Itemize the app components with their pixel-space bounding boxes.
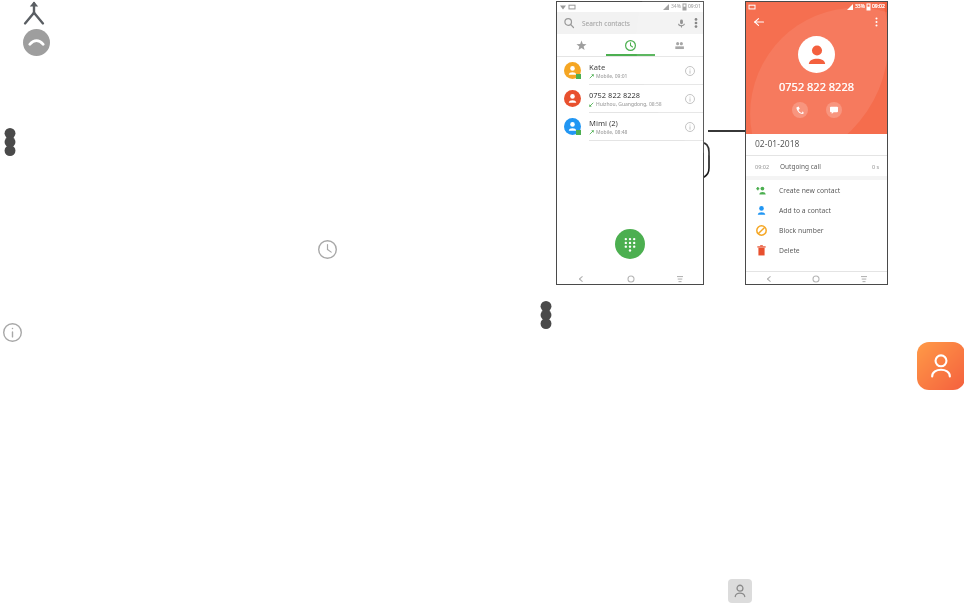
button[interactable]: Mimi (2) xyxy=(556,113,704,140)
button[interactable]: Home xyxy=(792,272,840,285)
button[interactable]: Contact xyxy=(728,579,752,603)
button[interactable]: Call xyxy=(792,102,808,118)
staticText: 0752 822 8228 xyxy=(589,90,641,100)
button[interactable]: Add to a contact xyxy=(745,200,888,220)
button[interactable]: Back xyxy=(751,14,767,30)
button[interactable]: 0752 822 8228 xyxy=(556,85,704,112)
button[interactable]: Back xyxy=(745,272,792,285)
button[interactable]: Recents xyxy=(840,272,888,285)
staticText: Search contacts xyxy=(582,19,630,28)
button[interactable]: Back xyxy=(556,272,606,285)
staticText: 09:01 xyxy=(688,3,701,10)
staticText: 0 s xyxy=(872,163,880,170)
button[interactable]: Recents xyxy=(606,34,655,56)
staticText: Block number xyxy=(779,226,824,235)
staticText: 09:02 xyxy=(755,163,770,170)
button[interactable]: Contacts xyxy=(655,34,704,56)
button[interactable]: Call history xyxy=(318,240,337,259)
staticText: Outgoing call xyxy=(780,162,821,171)
button[interactable]: End call xyxy=(23,29,50,56)
button[interactable]: Merge calls xyxy=(20,1,48,29)
staticText: Kate xyxy=(589,62,606,72)
button[interactable]: Recents xyxy=(655,272,704,285)
button[interactable]: Kate xyxy=(556,57,704,84)
button[interactable]: Call details xyxy=(680,61,700,81)
staticText: Mimi (2) xyxy=(589,118,618,128)
staticText: 34% xyxy=(671,3,681,10)
button[interactable]: More options xyxy=(2,130,18,154)
staticText: Mobile, 09:01 xyxy=(596,73,628,80)
button[interactable]: 09:02 xyxy=(745,156,888,176)
button[interactable]: Delete xyxy=(745,240,888,260)
button[interactable]: Home xyxy=(606,272,655,285)
button[interactable]: Call details xyxy=(680,89,700,109)
staticText: 33% xyxy=(855,3,865,10)
button[interactable]: Information xyxy=(3,323,22,342)
button[interactable]: More options xyxy=(538,303,554,327)
staticText: Mobile, 08:48 xyxy=(596,129,628,136)
button[interactable]: Block number xyxy=(745,220,888,240)
button[interactable]: Call details xyxy=(680,117,700,137)
button[interactable]: More options xyxy=(868,14,884,30)
button[interactable]: Create new contact xyxy=(745,180,888,200)
staticText: Huizhou, Guangdong, 08:58 xyxy=(596,101,662,108)
button[interactable]: Dialpad xyxy=(615,229,645,259)
staticText: 09:02 xyxy=(872,3,885,10)
button[interactable]: Favourites xyxy=(556,34,606,56)
staticText: Add to a contact xyxy=(779,206,831,215)
staticText: Create new contact xyxy=(779,186,841,195)
button[interactable]: Contacts app xyxy=(917,342,964,390)
button[interactable]: Search contacts xyxy=(556,12,704,34)
staticText: Delete xyxy=(779,246,800,255)
button[interactable]: Message xyxy=(826,102,842,118)
staticText: 02-01-2018 xyxy=(755,138,800,150)
staticText: 0752 822 8228 xyxy=(745,79,888,94)
